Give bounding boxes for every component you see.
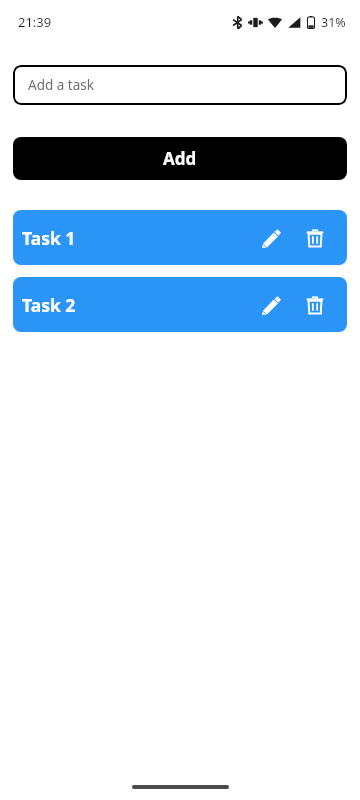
- staticText: Task 1: [22, 226, 76, 250]
- staticText: Task 2: [22, 293, 76, 317]
- staticText: Add a task: [28, 76, 94, 94]
- button[interactable]: Edit task: [252, 286, 290, 324]
- staticText: 31%: [321, 14, 346, 31]
- button[interactable]: Add: [13, 137, 347, 180]
- staticText: Add: [163, 147, 197, 170]
- button[interactable]: Delete task: [296, 286, 334, 324]
- button[interactable]: Task 1: [13, 210, 347, 265]
- button[interactable]: Delete task: [296, 219, 334, 257]
- button[interactable]: Add a task: [13, 65, 347, 105]
- button[interactable]: Edit task: [252, 219, 290, 257]
- staticText: 21:39: [18, 13, 52, 31]
- button[interactable]: Task 2: [13, 277, 347, 332]
